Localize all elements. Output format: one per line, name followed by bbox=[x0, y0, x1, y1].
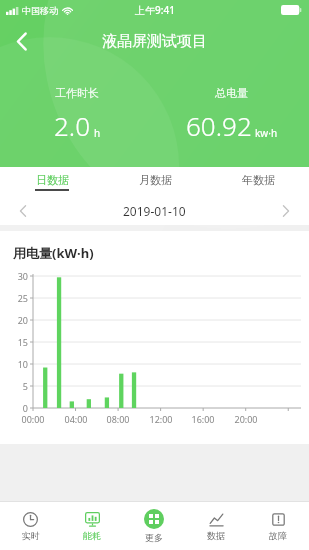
button[interactable]: 能耗 bbox=[61, 502, 123, 550]
button[interactable]: 数据 bbox=[185, 502, 247, 550]
button[interactable]: 工作时长 bbox=[0, 86, 154, 143]
staticText: 0 bbox=[22, 402, 28, 414]
staticText: 中国移动 bbox=[22, 5, 58, 16]
button[interactable]: 年数据 bbox=[206, 167, 309, 197]
staticText: 能耗 bbox=[83, 530, 101, 541]
other: 数据 bbox=[209, 512, 224, 527]
staticText: 数据 bbox=[207, 530, 225, 541]
staticText: 20 bbox=[17, 314, 28, 326]
staticText: 月数据 bbox=[139, 173, 172, 187]
staticText: kw·h bbox=[255, 126, 278, 140]
other: 实时 bbox=[23, 512, 38, 527]
staticText: 实时 bbox=[22, 530, 40, 541]
staticText: 15 bbox=[17, 336, 28, 348]
other: 能耗 bbox=[85, 512, 100, 527]
staticText: 30 bbox=[17, 270, 28, 282]
button[interactable]: 月数据 bbox=[103, 167, 206, 197]
button[interactable]: 返回 bbox=[3, 22, 41, 60]
staticText: 总电量 bbox=[215, 86, 248, 100]
staticText: 年数据 bbox=[242, 173, 275, 187]
staticText: 10 bbox=[17, 358, 28, 370]
button[interactable]: 前一天 bbox=[0, 197, 46, 225]
button[interactable]: 更多 bbox=[123, 502, 185, 550]
staticText: h bbox=[94, 126, 101, 140]
button[interactable]: 总电量 bbox=[154, 86, 309, 143]
staticText: 08:00 bbox=[106, 413, 130, 425]
staticText: 25 bbox=[17, 292, 28, 304]
button[interactable]: 实时 bbox=[0, 502, 61, 550]
staticText: 用电量(kW·h) bbox=[13, 244, 94, 262]
staticText: 故障 bbox=[269, 530, 287, 541]
button[interactable]: 故障 bbox=[247, 502, 309, 550]
staticText: 16:00 bbox=[191, 413, 215, 425]
staticText: 20:00 bbox=[234, 413, 258, 425]
other: 故障 bbox=[271, 512, 286, 527]
staticText: 日数据 bbox=[36, 173, 69, 187]
staticText: 5 bbox=[22, 380, 28, 392]
staticText: 液晶屏测试项目 bbox=[102, 32, 207, 51]
button[interactable]: 日数据 bbox=[0, 167, 103, 197]
staticText: 60.92 bbox=[186, 108, 252, 143]
button[interactable]: 后一天 bbox=[263, 197, 309, 225]
staticText: 更多 bbox=[145, 532, 163, 543]
staticText: 00:00 bbox=[21, 413, 45, 425]
other: 更多 bbox=[144, 509, 164, 529]
staticText: 2.0 bbox=[54, 108, 91, 143]
staticText: 04:00 bbox=[64, 413, 88, 425]
staticText: 2019-01-10 bbox=[123, 203, 186, 219]
staticText: 上午9:41 bbox=[135, 3, 175, 17]
staticText: 12:00 bbox=[149, 413, 173, 425]
staticText: 工作时长 bbox=[55, 86, 99, 100]
